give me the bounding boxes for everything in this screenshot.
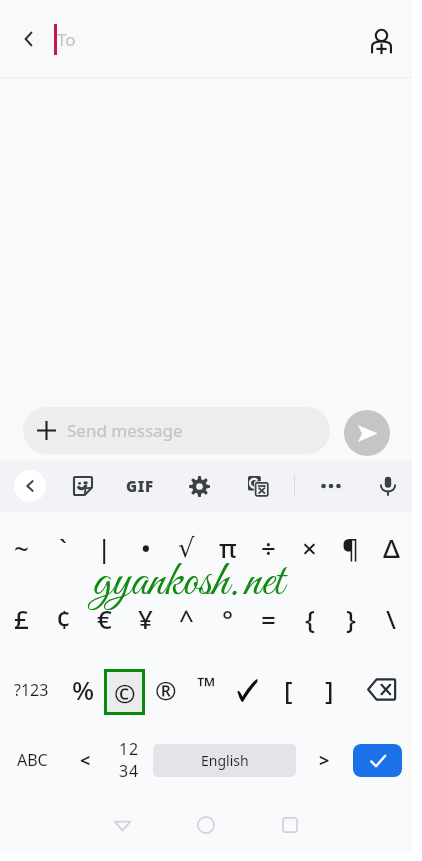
button[interactable]: Back: [100, 803, 144, 847]
button[interactable]: Send message: [23, 407, 330, 454]
button[interactable]: ×: [289, 512, 330, 583]
button[interactable]: |: [84, 512, 125, 583]
button[interactable]: ¢: [42, 583, 84, 654]
staticText: 12: [119, 738, 139, 760]
staticText: [: [284, 672, 293, 707]
button[interactable]: 12: [105, 725, 153, 795]
staticText: ]: [325, 672, 334, 707]
button[interactable]: Add person: [363, 22, 400, 59]
staticText: ¢: [56, 601, 71, 636]
staticText: ÷: [261, 530, 276, 565]
staticText: <: [80, 748, 91, 773]
button[interactable]: Next: [296, 725, 353, 795]
button[interactable]: ¥: [125, 583, 166, 654]
button[interactable]: •: [125, 512, 166, 583]
staticText: ABC: [17, 749, 48, 771]
button[interactable]: ^: [166, 583, 207, 654]
button[interactable]: ÷: [248, 512, 289, 583]
button[interactable]: Voice input: [368, 466, 408, 506]
staticText: `: [59, 530, 67, 565]
button[interactable]: Stickers: [63, 466, 103, 506]
staticText: }: [346, 601, 356, 636]
staticText: gyankosh.net: [93, 552, 284, 613]
staticText: ?123: [14, 679, 49, 701]
staticText: >: [319, 748, 330, 773]
staticText: 34: [119, 760, 139, 782]
staticText: π: [219, 530, 237, 565]
button[interactable]: €: [84, 583, 125, 654]
button[interactable]: More options: [311, 466, 351, 506]
button[interactable]: Previous: [65, 725, 105, 795]
button[interactable]: ]: [309, 654, 350, 725]
staticText: {: [305, 601, 315, 636]
staticText: \: [386, 601, 397, 636]
button[interactable]: ¶: [330, 512, 371, 583]
button[interactable]: ©: [104, 654, 145, 725]
staticText: =: [261, 601, 276, 636]
staticText: €: [97, 601, 112, 636]
staticText: ¥: [138, 601, 153, 636]
staticText: ®: [155, 672, 177, 707]
staticText: √: [178, 533, 195, 563]
button[interactable]: %: [63, 654, 104, 725]
button[interactable]: Settings: [179, 466, 219, 506]
staticText: ×: [302, 530, 317, 565]
button[interactable]: [: [268, 654, 309, 725]
button[interactable]: ™: [186, 654, 227, 725]
button[interactable]: {: [289, 583, 330, 654]
button[interactable]: Collapse toolbar: [10, 466, 50, 506]
button[interactable]: Back: [11, 21, 47, 57]
button[interactable]: °: [207, 583, 248, 654]
staticText: %: [72, 672, 95, 707]
staticText: GIF: [126, 476, 154, 496]
button[interactable]: Recent apps: [268, 803, 312, 847]
button[interactable]: \: [371, 583, 412, 654]
button[interactable]: =: [248, 583, 289, 654]
button[interactable]: ?123: [0, 654, 63, 725]
staticText: £: [14, 601, 29, 636]
button[interactable]: Enter: [353, 744, 402, 777]
button[interactable]: English: [153, 744, 296, 777]
staticText: English: [201, 751, 249, 770]
button[interactable]: GIF: [120, 466, 160, 506]
staticText: To: [57, 28, 76, 51]
button[interactable]: [227, 654, 268, 725]
button[interactable]: £: [0, 583, 42, 654]
button[interactable]: Send: [344, 410, 390, 456]
button[interactable]: ®: [145, 654, 186, 725]
button[interactable]: Translate: [238, 466, 278, 506]
staticText: ©: [114, 675, 136, 710]
staticText: ~: [14, 530, 29, 565]
staticText: Δ: [383, 530, 400, 565]
button[interactable]: }: [330, 583, 371, 654]
staticText: ™: [197, 669, 216, 702]
staticText: ¶: [342, 530, 359, 565]
staticText: |: [97, 530, 112, 565]
staticText: ^: [179, 601, 194, 636]
button[interactable]: Δ: [371, 512, 412, 583]
staticText: Send message: [67, 419, 183, 442]
staticText: •: [141, 530, 151, 565]
staticText: °: [222, 601, 234, 636]
button[interactable]: ~: [0, 512, 42, 583]
button[interactable]: π: [207, 512, 248, 583]
button[interactable]: Backspace: [350, 654, 412, 725]
button[interactable]: `: [42, 512, 84, 583]
button[interactable]: ABC: [0, 725, 65, 795]
button[interactable]: Home: [184, 803, 228, 847]
button[interactable]: √: [166, 512, 207, 583]
